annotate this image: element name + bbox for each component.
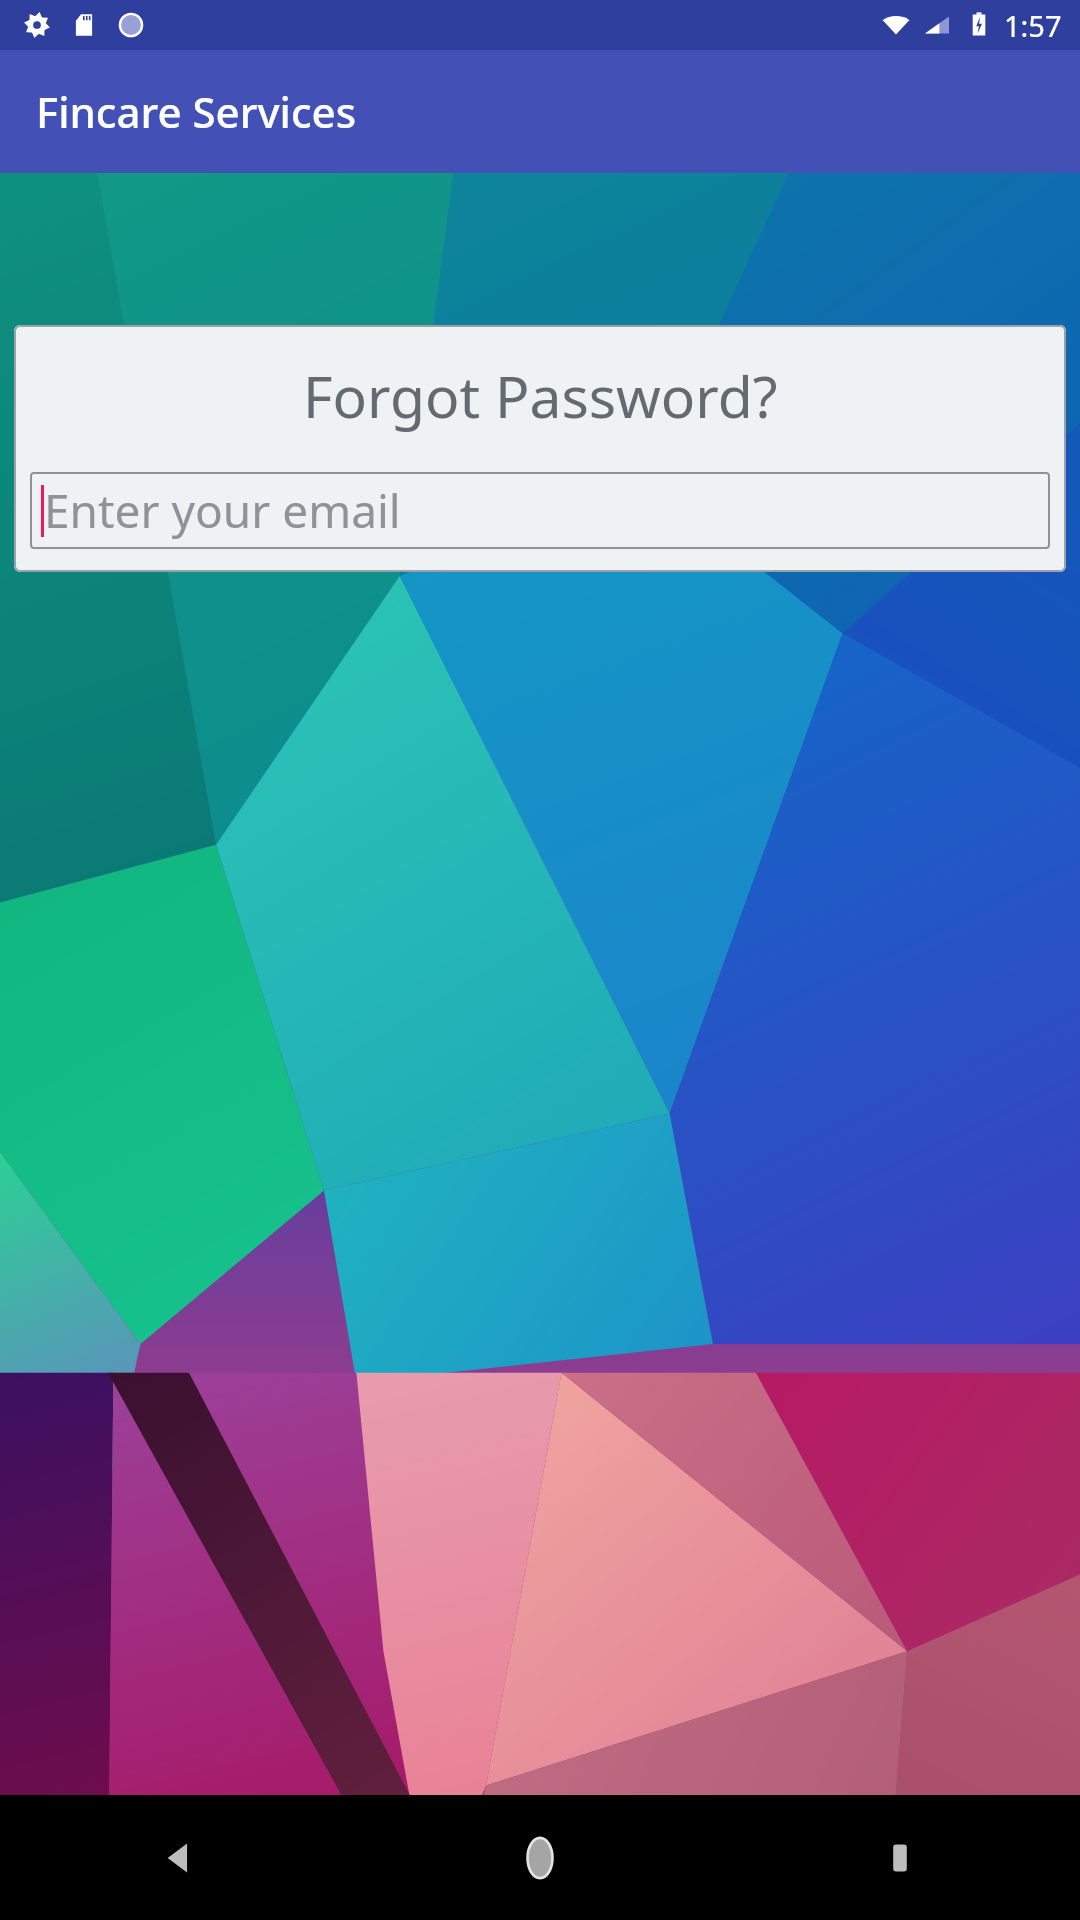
button[interactable]: Recent apps — [720, 1795, 1080, 1920]
button[interactable]: Enter your email — [30, 472, 1050, 549]
staticText: 1:57 — [1004, 6, 1062, 45]
staticText: Forgot Password? — [303, 357, 778, 435]
staticText: Fincare Services — [36, 83, 357, 140]
staticText: Enter your email — [44, 479, 401, 542]
button[interactable]: Home — [360, 1795, 720, 1920]
button[interactable]: Back — [0, 1795, 360, 1920]
